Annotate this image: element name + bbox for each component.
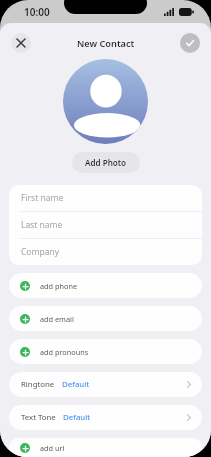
button[interactable]: Done [180, 33, 200, 53]
button[interactable]: First name [9, 185, 202, 211]
staticText: Default [63, 412, 91, 423]
button[interactable]: add email [9, 306, 202, 331]
button[interactable]: Last name [9, 212, 202, 238]
button[interactable]: add phone [9, 273, 202, 298]
staticText: Text Tone [21, 412, 56, 423]
staticText: Ringtone [21, 379, 55, 390]
staticText: Default [62, 379, 90, 390]
button[interactable]: add url [9, 438, 202, 457]
staticText: Add Photo [85, 157, 127, 168]
staticText: Last name [21, 219, 63, 231]
staticText: add email [40, 314, 74, 324]
staticText: add pronouns [40, 347, 89, 357]
button[interactable]: Close [11, 33, 31, 53]
button[interactable]: Company [9, 239, 202, 265]
button[interactable]: Text Tone [9, 405, 202, 430]
button[interactable]: Ringtone [9, 372, 202, 397]
staticText: add phone [40, 281, 78, 291]
staticText: Company [21, 246, 60, 258]
staticText: add url [40, 443, 65, 453]
button[interactable]: Add Photo [72, 152, 140, 173]
staticText: 10:00 [24, 5, 50, 19]
staticText: First name [21, 192, 64, 204]
staticText: New Contact [77, 37, 135, 50]
button[interactable]: add pronouns [9, 339, 202, 364]
